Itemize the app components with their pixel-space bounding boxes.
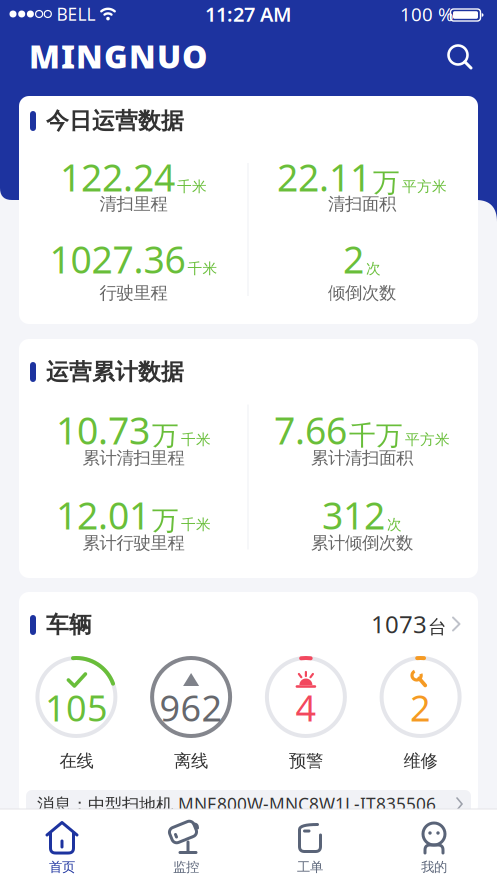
staticText: 122.24 (60, 152, 175, 202)
button[interactable]: Search (440, 34, 484, 78)
staticText: 清扫里程 (99, 193, 167, 215)
button[interactable]: 消息：中型扫地机 MNE800W-MNC8W1L-IT835506 (26, 789, 471, 817)
staticText: 2 (410, 684, 431, 731)
staticText: 倾倒次数 (328, 282, 396, 304)
staticText: 累计行驶里程 (82, 532, 184, 554)
staticText: BELL (56, 2, 95, 25)
staticText: 2 (343, 234, 364, 284)
button[interactable]: 1073台 (320, 602, 470, 646)
staticText: 车辆 (46, 611, 92, 639)
staticText: 千米 (187, 260, 217, 278)
staticText: 7.66 (274, 405, 347, 455)
button[interactable]: 监控 (141, 809, 231, 883)
staticText: 11:27 AM (205, 1, 292, 27)
staticText: 千米 (181, 516, 211, 534)
staticText: 次 (387, 516, 402, 534)
staticText: 千米 (177, 178, 207, 196)
staticText: 平方米 (405, 431, 450, 449)
staticText: 22.11 (277, 152, 371, 202)
staticText: 312 (322, 490, 385, 540)
staticText: 行驶里程 (99, 282, 167, 304)
staticText: 工单 (297, 859, 323, 875)
staticText: 首页 (49, 859, 75, 875)
staticText: 1027.36 (49, 234, 185, 284)
staticText: 监控 (173, 859, 199, 875)
staticText: 离线 (174, 750, 208, 772)
staticText: 4 (295, 684, 316, 731)
button[interactable]: 首页 (17, 809, 107, 883)
staticText: 10.73 (56, 405, 150, 455)
staticText: 962 (160, 684, 223, 731)
staticText: 105 (45, 684, 108, 731)
staticText: 12.01 (56, 490, 150, 540)
staticText: 万 (152, 504, 179, 537)
staticText: 次 (366, 260, 381, 278)
staticText: 在线 (59, 750, 93, 772)
staticText: 千万 (349, 419, 403, 452)
staticText: 千米 (181, 431, 211, 449)
staticText: 预警 (289, 750, 323, 772)
staticText: 100 % (400, 2, 454, 26)
staticText: 消息：中型扫地机 MNE800W-MNC8W1L-IT835506 (37, 792, 436, 815)
button[interactable]: 我的 (389, 809, 479, 883)
staticText: 累计清扫里程 (82, 447, 184, 469)
button[interactable]: 工单 (265, 809, 355, 883)
staticText: 万 (373, 166, 400, 199)
staticText: MINGNUO (29, 35, 208, 77)
staticText: 维修 (404, 750, 438, 772)
staticText: 今日运营数据 (46, 107, 184, 135)
staticText: 万 (152, 419, 179, 452)
staticText: 运营累计数据 (46, 358, 184, 386)
staticText: 清扫面积 (328, 193, 396, 215)
staticText: 累计清扫面积 (311, 447, 413, 469)
staticText: 累计倾倒次数 (311, 532, 413, 554)
staticText: 台 (428, 616, 447, 638)
staticText: 平方米 (402, 178, 447, 196)
staticText: 我的 (421, 859, 447, 875)
staticText: 1073 (371, 608, 427, 640)
